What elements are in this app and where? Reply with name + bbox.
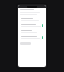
other: Status indicator [42,36,43,39]
button[interactable] [20,29,44,34]
button[interactable] [20,17,44,22]
button[interactable]: Status indicator [20,23,44,28]
other: Status indicator [42,24,43,27]
button[interactable]: Status indicator [20,35,44,40]
